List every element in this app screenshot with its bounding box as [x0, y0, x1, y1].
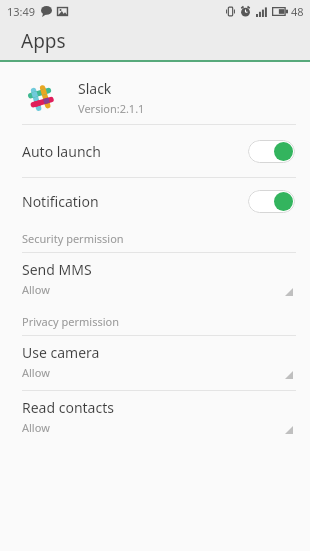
button[interactable]: Toggle, on	[248, 190, 295, 213]
button[interactable]: Read contacts	[0, 391, 310, 445]
button[interactable]: Use camera	[0, 336, 310, 390]
button[interactable]: Slack	[0, 71, 310, 124]
staticText: 48	[291, 4, 304, 19]
staticText: Security permission	[22, 231, 124, 246]
staticText: Allow	[22, 420, 50, 435]
staticText: Allow	[22, 282, 50, 297]
staticText: Slack	[78, 79, 112, 98]
staticText: Apps	[21, 28, 66, 54]
button[interactable]: Auto launch	[0, 125, 310, 177]
staticText: 13:49	[7, 4, 36, 19]
button[interactable]: Send MMS	[0, 253, 310, 307]
staticText: Privacy permission	[22, 314, 120, 329]
staticText: Version:2.1.1	[78, 101, 145, 116]
staticText: Allow	[22, 365, 50, 380]
staticText: Use camera	[22, 343, 100, 362]
staticText: Auto launch	[22, 142, 248, 161]
button[interactable]: Notification	[0, 178, 310, 224]
staticText: Read contacts	[22, 398, 114, 417]
staticText: Notification	[22, 192, 248, 211]
staticText: Send MMS	[22, 260, 92, 279]
button[interactable]: Toggle, on	[248, 140, 295, 163]
